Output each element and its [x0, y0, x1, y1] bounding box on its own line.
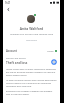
staticText: Ut enim ad minim veniam quis nostrud exe…	[6, 79, 57, 88]
button[interactable]: Edit profile	[3, 39, 60, 42]
staticText: Active	[47, 50, 54, 53]
staticText: Account	[6, 49, 17, 53]
staticText: 9:41	[5, 1, 11, 5]
staticText: Anita Waltford	[3, 26, 60, 31]
button[interactable]: Profile photo	[27, 15, 35, 23]
button[interactable]: Back	[5, 6, 11, 12]
staticText: Theft and loss	[6, 61, 28, 65]
button[interactable]: Account	[3, 48, 60, 54]
button[interactable]: Status	[50, 58, 57, 65]
staticText: Manage your account and settings here	[3, 33, 60, 36]
staticText: Lorem ipsum dolor sit amet consectetur a…	[6, 68, 57, 77]
staticText: Security and privacy	[6, 57, 26, 60]
staticText: Excepteur sint occaecat cupidatat non pr…	[6, 90, 57, 96]
